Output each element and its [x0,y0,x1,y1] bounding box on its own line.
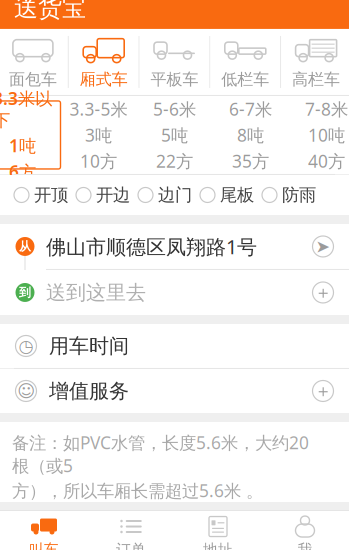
staticText: 3.3米以下 [0,87,52,131]
button[interactable]: 到 [0,270,349,315]
staticText: 增值服务 [49,379,129,403]
button[interactable]: 3.3米以下 [0,101,60,169]
button[interactable]: 开顶 [14,184,68,206]
staticText: 开边 [96,184,130,206]
staticText: 我 [297,540,312,550]
button[interactable]: 防雨 [262,184,316,206]
staticText: 叫车 [29,540,59,550]
button[interactable]: 厢式车 [69,29,139,95]
staticText: 边门 [158,184,192,206]
button[interactable]: 面包车 [0,29,68,95]
button[interactable]: 从 [0,224,349,269]
staticText: ＋ [314,380,331,402]
staticText: 10方 [80,149,117,172]
button[interactable]: 订单 [87,511,174,550]
staticText: 送货宝 [14,0,86,23]
staticText: 备注：如PVC水管，长度5.6米，大约20根（或5 [12,431,309,477]
staticText: 方），所以车厢长需超过5.6米 。 [12,479,263,502]
staticText: 8吨 [237,123,264,146]
staticText: 送到这里去 [46,280,146,305]
staticText: 5-6米 [153,97,196,120]
staticText: ＋ [314,282,331,303]
button[interactable]: 边门 [138,184,192,206]
staticText: 5吨 [161,123,188,146]
staticText: 35方 [232,149,269,172]
button[interactable]: 我 [261,511,348,550]
staticText: 1吨 [9,134,36,157]
staticText: ☺ [17,381,35,401]
staticText: 40方 [308,149,345,172]
staticText: 地址 [203,540,233,550]
staticText: 6方 [9,160,36,183]
staticText: ➤ [315,237,330,256]
button[interactable]: 7-8米 [288,101,349,169]
staticText: 7-8米 [305,97,348,120]
staticText: 22方 [156,149,193,172]
staticText: 高栏车 [292,70,340,89]
button[interactable]: 平板车 [140,29,209,95]
staticText: 订单 [116,540,146,550]
staticText: 开顶 [34,184,68,206]
staticText: 面包车 [9,70,57,89]
staticText: 3吨 [85,123,112,146]
staticText: 到 [19,285,31,300]
button[interactable]: 尾板 [200,184,254,206]
button[interactable]: 5-6米 [136,101,212,169]
button[interactable]: 低栏车 [210,29,280,95]
staticText: 防雨 [282,184,316,206]
staticText: 低栏车 [221,70,269,89]
button[interactable]: 高栏车 [281,29,349,95]
staticText: 佛山市顺德区凤翔路1号 [46,233,257,260]
staticText: 厢式车 [80,70,128,89]
button[interactable]: ☺ [0,369,349,413]
button[interactable]: 开边 [76,184,130,206]
button[interactable]: 6-7米 [212,101,288,169]
staticText: 3.3-5米 [69,97,127,120]
staticText: 用车时间 [49,334,129,358]
button[interactable]: 3.3-5米 [60,101,136,169]
staticText: 尾板 [220,184,254,206]
button[interactable]: ◷ [0,324,349,368]
staticText: 6-7米 [229,97,272,120]
button[interactable]: 叫车 [0,511,87,550]
staticText: 从 [19,239,31,254]
staticText: 10吨 [308,123,345,146]
button[interactable]: 地址 [174,511,261,550]
staticText: 平板车 [150,70,198,89]
staticText: ◷ [18,336,33,356]
